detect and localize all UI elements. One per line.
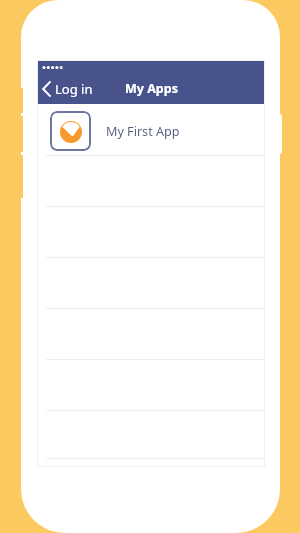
button[interactable]: Log in (41, 80, 93, 98)
staticText: My Apps (125, 80, 178, 97)
staticText: Log in (55, 80, 93, 98)
button[interactable]: My First App (37, 104, 265, 155)
button[interactable] (37, 458, 265, 467)
staticText: My First App (106, 123, 180, 140)
